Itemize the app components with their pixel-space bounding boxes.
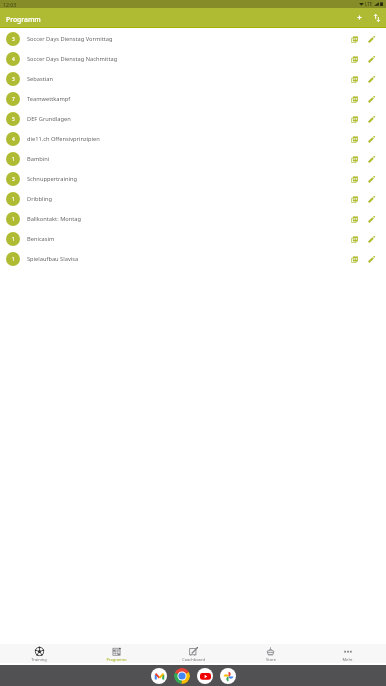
button[interactable]: Add xyxy=(351,9,368,26)
button[interactable]: 1 xyxy=(0,229,386,249)
button[interactable]: Sort xyxy=(368,9,385,26)
button[interactable]: Edit xyxy=(363,29,380,49)
button[interactable]: Gmail xyxy=(151,668,167,684)
button[interactable]: 1 xyxy=(0,189,386,209)
staticText: DEF Grundlagen xyxy=(27,115,346,123)
staticText: die11.ch Offensivprinzipien xyxy=(27,135,346,143)
button[interactable]: Edit xyxy=(363,249,380,269)
button[interactable]: Duplicate xyxy=(346,209,363,229)
button[interactable]: Duplicate xyxy=(346,149,363,169)
button[interactable]: Edit xyxy=(363,49,380,69)
button[interactable]: Duplicate xyxy=(346,89,363,109)
staticText: 12:03 xyxy=(3,1,17,8)
button[interactable]: 1 xyxy=(0,249,386,269)
button[interactable]: Mehr xyxy=(309,644,386,663)
staticText: Mehr xyxy=(342,657,353,662)
staticText: 3 xyxy=(12,76,15,83)
staticText: Soccer Days Dienstag Vormittag xyxy=(27,35,346,43)
button[interactable]: Edit xyxy=(363,109,380,129)
button[interactable]: Edit xyxy=(363,129,380,149)
button[interactable]: Chrome xyxy=(174,668,190,684)
button[interactable]: 3 xyxy=(0,29,386,49)
staticText: 7 xyxy=(12,96,15,103)
staticText: Sebastian xyxy=(27,75,346,83)
button[interactable]: Edit xyxy=(363,209,380,229)
staticText: Benicasim xyxy=(27,235,346,243)
staticText: Training xyxy=(31,657,47,662)
staticText: 4 xyxy=(12,56,15,63)
staticText: 3 xyxy=(12,36,15,43)
button[interactable]: Training xyxy=(0,644,78,663)
staticText: 1 xyxy=(12,216,15,223)
button[interactable]: Coachboard xyxy=(155,644,232,663)
staticText: Bambini xyxy=(27,155,346,163)
staticText: Spielaufbau Slavisa xyxy=(27,255,346,263)
button[interactable]: 7 xyxy=(0,89,386,109)
button[interactable]: Duplicate xyxy=(346,169,363,189)
button[interactable]: 4 xyxy=(0,49,386,69)
staticText: Programm xyxy=(106,657,127,662)
button[interactable]: 3 xyxy=(0,69,386,89)
staticText: 1 xyxy=(12,256,15,263)
button[interactable]: Edit xyxy=(363,169,380,189)
button[interactable]: Photos xyxy=(220,668,236,684)
staticText: Teamwettkampf xyxy=(27,95,346,103)
button[interactable]: Edit xyxy=(363,189,380,209)
button[interactable]: 5 xyxy=(0,109,386,129)
staticText: 5 xyxy=(12,116,15,123)
staticText: 3 xyxy=(12,176,15,183)
staticText: Store xyxy=(266,657,276,662)
button[interactable]: Edit xyxy=(363,229,380,249)
staticText: 1 xyxy=(12,156,15,163)
staticText: 4 xyxy=(12,136,15,143)
staticText: Programm xyxy=(6,15,41,24)
button[interactable]: Duplicate xyxy=(346,249,363,269)
button[interactable]: Edit xyxy=(363,89,380,109)
button[interactable]: Edit xyxy=(363,69,380,89)
button[interactable]: 4 xyxy=(0,129,386,149)
staticText: 1 xyxy=(12,236,15,243)
button[interactable]: 1 xyxy=(0,209,386,229)
staticText: Schnuppertraining xyxy=(27,175,346,183)
staticText: Coachboard xyxy=(182,657,205,662)
button[interactable]: Duplicate xyxy=(346,129,363,149)
button[interactable]: Duplicate xyxy=(346,49,363,69)
button[interactable]: YouTube xyxy=(197,668,213,684)
staticText: Dribbling xyxy=(27,195,346,203)
button[interactable]: Duplicate xyxy=(346,69,363,89)
staticText: 1 xyxy=(12,196,15,203)
button[interactable]: Duplicate xyxy=(346,29,363,49)
button[interactable]: Duplicate xyxy=(346,109,363,129)
button[interactable]: 1 xyxy=(0,149,386,169)
button[interactable]: Duplicate xyxy=(346,229,363,249)
button[interactable]: Duplicate xyxy=(346,189,363,209)
staticText: LTE xyxy=(365,1,373,7)
button[interactable]: Edit xyxy=(363,149,380,169)
staticText: Soccer Days Dienstag Nachmittag xyxy=(27,55,346,63)
button[interactable]: Programm xyxy=(78,644,155,663)
button[interactable]: Store xyxy=(232,644,309,663)
button[interactable]: 3 xyxy=(0,169,386,189)
staticText: Ballkontakt: Montag xyxy=(27,215,346,223)
